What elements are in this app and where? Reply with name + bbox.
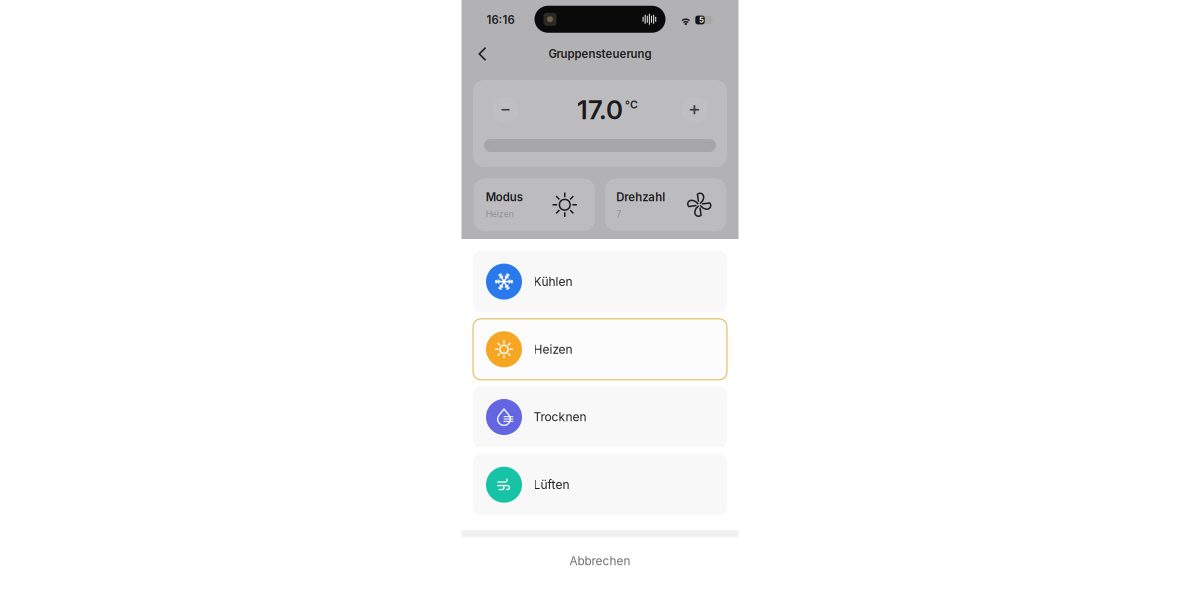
staticText: 5 bbox=[699, 15, 704, 25]
staticText: Heizen bbox=[486, 209, 514, 219]
staticText: 7 bbox=[616, 209, 621, 219]
staticText: Gruppensteuerung bbox=[548, 47, 651, 61]
button[interactable]: Back bbox=[469, 42, 495, 66]
staticText: Heizen bbox=[533, 342, 572, 356]
staticText: Drehzahl bbox=[616, 190, 665, 204]
staticText: Abbrechen bbox=[569, 554, 630, 568]
button[interactable]: Drehzahl bbox=[605, 178, 726, 231]
button[interactable]: Trocknen bbox=[473, 386, 727, 447]
button[interactable]: Heizen bbox=[473, 319, 727, 380]
button[interactable]: Decrease temperature bbox=[492, 96, 519, 123]
staticText: Modus bbox=[486, 190, 523, 204]
staticText: °C bbox=[625, 98, 638, 111]
button[interactable]: Kühlen bbox=[473, 251, 727, 312]
button[interactable]: Increase temperature bbox=[681, 96, 708, 123]
staticText: 16:16 bbox=[486, 13, 514, 27]
staticText: Lüften bbox=[533, 477, 569, 492]
staticText: Trocknen bbox=[533, 410, 586, 424]
button[interactable]: Abbrechen bbox=[461, 537, 738, 585]
staticText: Kühlen bbox=[533, 274, 572, 289]
staticText: 17.0 bbox=[577, 94, 623, 125]
button[interactable]: Modus bbox=[474, 178, 595, 231]
button[interactable]: Lüften bbox=[473, 454, 727, 515]
